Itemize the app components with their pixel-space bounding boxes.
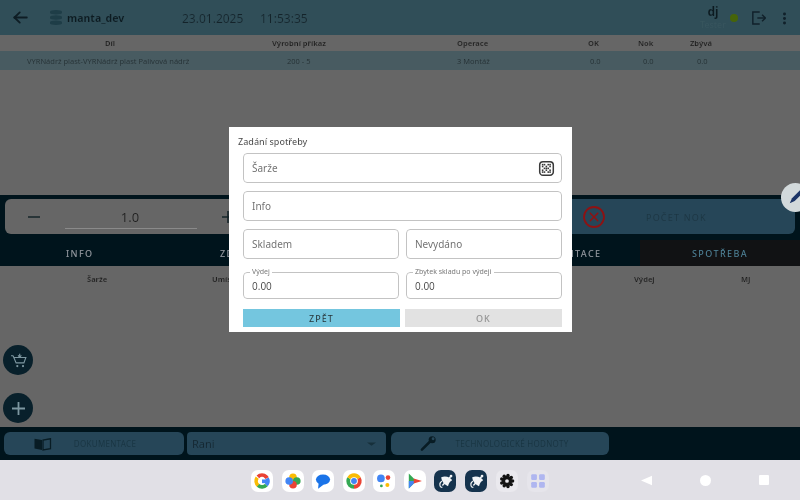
staticText: dj: [692, 3, 734, 19]
button[interactable]: INFO: [0, 240, 160, 266]
button[interactable]: All apps: [527, 470, 549, 492]
button[interactable]: Manta: [465, 470, 487, 492]
staticText: Výdej: [252, 267, 270, 277]
staticText: NÁSTROJE: [373, 247, 428, 259]
button[interactable]: ZDROJE: [160, 240, 320, 266]
button[interactable]: Info: [243, 191, 562, 221]
button[interactable]: Add to cart: [3, 345, 33, 375]
button[interactable]: Add: [3, 393, 33, 423]
staticText: ZDROJE: [220, 247, 261, 259]
staticText: ZPĚT: [309, 312, 334, 324]
button[interactable]: Chrome: [343, 470, 365, 492]
staticText: INFO: [66, 247, 94, 259]
button[interactable]: SPOTŘEBA: [640, 240, 800, 266]
staticText: Rani: [192, 436, 215, 451]
staticText: POČET NOK: [646, 211, 707, 223]
button[interactable]: Edit: [781, 183, 800, 212]
staticText: Zbytek skladu po výdeji: [415, 267, 492, 277]
staticText: 1.0: [90, 208, 170, 226]
staticText: Operace: [457, 38, 489, 48]
staticText: OK: [476, 312, 491, 324]
button[interactable]: dj: [692, 0, 734, 35]
button[interactable]: POČET NOK: [557, 199, 795, 234]
button[interactable]: Home: [691, 466, 719, 494]
staticText: SPOTŘEBA: [692, 247, 748, 259]
button[interactable]: Play Store: [404, 470, 426, 492]
staticText: manta_dev: [67, 11, 125, 25]
staticText: 11:53:35: [260, 10, 308, 26]
button[interactable]: Šarže: [243, 153, 562, 183]
staticText: Tester: [692, 18, 734, 30]
staticText: DOKUMENTACE: [65, 438, 145, 449]
staticText: Výdej: [634, 274, 655, 284]
button[interactable]: More options: [772, 6, 796, 30]
button[interactable]: Back: [3, 0, 38, 35]
button[interactable]: Skladem: [243, 229, 399, 259]
staticText: 0.00: [252, 279, 272, 293]
staticText: 0.0: [697, 56, 708, 66]
button[interactable]: Decrease: [20, 203, 48, 231]
staticText: Nevydáno: [415, 237, 463, 251]
button[interactable]: TECHNOLOGICKÉ HODNOTY: [391, 432, 609, 455]
button[interactable]: Messages: [312, 470, 334, 492]
button[interactable]: Recents: [750, 466, 778, 494]
button[interactable]: 0.00: [243, 272, 399, 299]
button[interactable]: OK: [405, 309, 562, 327]
button[interactable]: Manta: [434, 470, 456, 492]
staticText: OK: [588, 38, 599, 48]
staticText: 200 - 5: [287, 56, 311, 66]
button[interactable]: DOKUMENTACE: [480, 240, 640, 266]
button[interactable]: DOKUMENTACE: [4, 432, 184, 455]
staticText: 0.0: [590, 56, 601, 66]
staticText: Nok: [638, 38, 654, 48]
button[interactable]: Scan barcode: [539, 161, 554, 176]
staticText: MJ: [741, 274, 751, 284]
button[interactable]: Assistant: [373, 470, 395, 492]
button[interactable]: ZPĚT: [243, 309, 400, 327]
staticText: VYRNádrž plast-VYRNádrž plast Palivová n…: [27, 56, 190, 66]
button[interactable]: VYRNádrž plast-VYRNádrž plast Palivová n…: [0, 51, 800, 70]
button[interactable]: NÁSTROJE: [320, 240, 480, 266]
staticText: 23.01.2025: [182, 10, 244, 26]
button[interactable]: Photos: [282, 470, 304, 492]
staticText: Díl: [105, 38, 115, 48]
button[interactable]: Rani: [187, 432, 386, 455]
staticText: Šarže: [87, 274, 108, 284]
staticText: Zbývá: [690, 38, 712, 48]
button[interactable]: Settings: [496, 470, 518, 492]
staticText: TECHNOLOGICKÉ HODNOTY: [442, 438, 582, 449]
staticText: Zadání spotřeby: [238, 135, 308, 147]
button[interactable]: Back: [632, 466, 660, 494]
staticText: 0.0: [643, 56, 654, 66]
staticText: 3 Montáž: [457, 56, 490, 66]
staticText: Info: [252, 199, 272, 213]
button[interactable]: 0.00: [406, 272, 562, 299]
staticText: Skladem: [252, 237, 293, 251]
staticText: 0.00: [415, 279, 435, 293]
staticText: Umístění: [212, 274, 246, 284]
button[interactable]: Logout: [747, 6, 771, 30]
staticText: DOKUMENTACE: [519, 247, 602, 259]
staticText: Výrobní příkaz: [272, 38, 327, 48]
button[interactable]: Increase: [214, 203, 242, 231]
button[interactable]: Google: [251, 470, 273, 492]
staticText: Šarže: [252, 161, 278, 175]
button[interactable]: Nevydáno: [406, 229, 562, 259]
